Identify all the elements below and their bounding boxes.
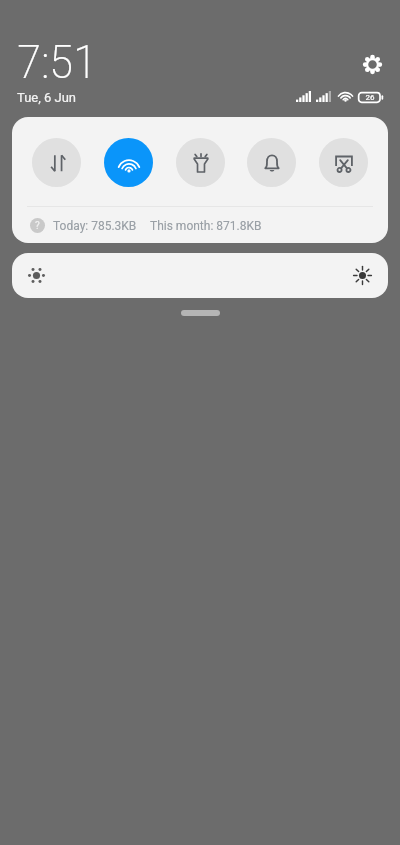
staticText: Tue, 6 Jun (17, 90, 77, 105)
staticText: Today: 785.3KB (53, 219, 137, 233)
button[interactable]: ? (12, 208, 388, 243)
staticText: 26 (363, 93, 377, 102)
button[interactable]: Brightness (12, 253, 388, 298)
button[interactable]: Flashlight (176, 138, 225, 187)
staticText: ? (35, 220, 40, 232)
button[interactable]: Notifications (247, 138, 296, 187)
other: 7:51 (0, 0, 400, 117)
staticText: This month: 871.8KB (150, 219, 262, 233)
button[interactable]: Screenshot (319, 138, 368, 187)
button[interactable]: Settings (360, 52, 384, 76)
button[interactable]: Mobile data (32, 138, 81, 187)
button[interactable]: Wi-Fi (104, 138, 153, 187)
